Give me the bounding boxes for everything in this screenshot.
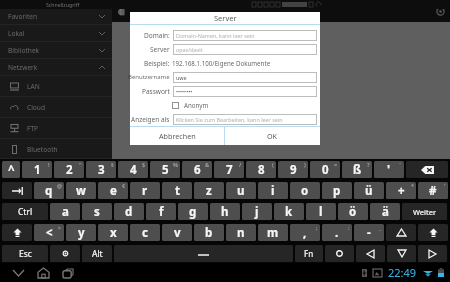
button[interactable]: w [66,182,96,199]
button[interactable]: s [82,203,112,220]
button[interactable]: Favoriten [0,8,112,25]
button[interactable] [50,245,80,262]
button[interactable]: x [98,224,128,241]
button[interactable]: opas/davit [173,44,317,55]
button[interactable]: uwe [173,72,317,83]
button[interactable] [356,245,385,262]
button[interactable]: LAN [0,76,112,97]
button[interactable]: a [50,203,80,220]
button[interactable]: Esc [2,245,48,262]
button[interactable]: ö [338,203,368,220]
button[interactable]: FTP [0,118,112,139]
button[interactable]: ' [374,161,404,178]
button[interactable]: # [418,182,448,199]
button[interactable]: + [386,182,416,199]
button[interactable]: ä [370,203,400,220]
button[interactable]: Options [434,5,447,18]
button[interactable]: Back [9,264,27,282]
button[interactable]: Weiter [402,203,447,220]
button[interactable]: Klicken Sie zum Bearbeiten, kann leer se… [173,114,317,125]
button[interactable]: Anonym [172,101,209,109]
button[interactable]: t [162,182,192,199]
button[interactable]: 0 [310,161,340,178]
button[interactable]: Domain-Namen, kann leer sein [173,30,317,41]
button[interactable]: m [258,224,288,241]
button[interactable]: < [34,224,64,241]
button[interactable]: n [226,224,256,241]
button[interactable]: e [98,182,128,199]
staticText: a [62,204,69,220]
button[interactable]: Fn [295,245,323,262]
button[interactable]: u [226,182,256,199]
button[interactable]: 5 [150,161,180,178]
staticText: 22:49 [388,265,417,280]
button[interactable]: c [130,224,160,241]
button[interactable] [2,182,32,199]
button[interactable]: 1 [22,161,52,178]
button[interactable]: •••••••• [173,86,317,97]
button[interactable]: Bibliothek [0,42,112,59]
button[interactable]: 7 [214,161,244,178]
button[interactable]: l [306,203,336,220]
button[interactable]: 2 [54,161,84,178]
button[interactable]: d [114,203,144,220]
button[interactable] [406,161,448,178]
button[interactable]: 3 [86,161,116,178]
button[interactable]: OK [225,127,320,145]
button[interactable]: z [194,182,224,199]
button[interactable]: 6 [182,161,212,178]
button[interactable] [418,245,447,262]
button[interactable]: Bluetooth [0,139,112,159]
button[interactable]: v [162,224,192,241]
staticText: Beispiel: [144,59,170,68]
button[interactable]: r [130,182,160,199]
staticText: x [110,225,117,241]
button[interactable]: ß [342,161,372,178]
button[interactable]: Menu [114,5,127,18]
button[interactable]: i [258,182,288,199]
button[interactable]: f [146,203,176,220]
button[interactable]: 9 [278,161,308,178]
button[interactable]: , [290,224,320,241]
button[interactable]: y [66,224,96,241]
staticText: Schnellzugriff [46,1,80,8]
staticText: FTP [27,124,39,133]
button[interactable] [2,224,32,241]
button[interactable]: g [178,203,208,220]
button[interactable]: Cloud [0,97,112,118]
staticText: Benutzername [128,73,170,81]
button[interactable]: j [242,203,272,220]
staticText: ( [272,161,274,168]
button[interactable]: 4 [118,161,148,178]
staticText: ö [349,204,357,220]
button[interactable]: p [322,182,352,199]
button[interactable]: Recent apps [59,264,77,282]
button[interactable]: Lokal [0,25,112,42]
button[interactable]: Home [34,264,52,282]
button[interactable]: Netzwerk [0,59,112,76]
button[interactable]: . [322,224,352,241]
button[interactable]: q [34,182,64,199]
staticText: _ [379,224,382,231]
staticText: ^ [8,162,15,178]
button[interactable] [114,245,293,262]
button[interactable] [387,245,416,262]
staticText: t [175,183,180,199]
button[interactable]: - [354,224,384,241]
button[interactable] [325,245,354,262]
staticText: Domain-Namen, kann leer sein [176,32,255,39]
button[interactable]: h [210,203,240,220]
staticText: 4 [130,162,137,178]
button[interactable]: ^ [2,161,20,178]
button[interactable]: ü [354,182,384,199]
button[interactable]: Abbrechen [130,127,224,145]
button[interactable] [418,224,448,241]
button[interactable]: o [290,182,320,199]
button[interactable] [386,224,416,241]
button[interactable]: b [194,224,224,241]
staticText: h [221,204,229,220]
button[interactable]: k [274,203,304,220]
button[interactable]: 8 [246,161,276,178]
button[interactable]: Alt [82,245,112,262]
button[interactable]: Ctrl [2,203,48,220]
